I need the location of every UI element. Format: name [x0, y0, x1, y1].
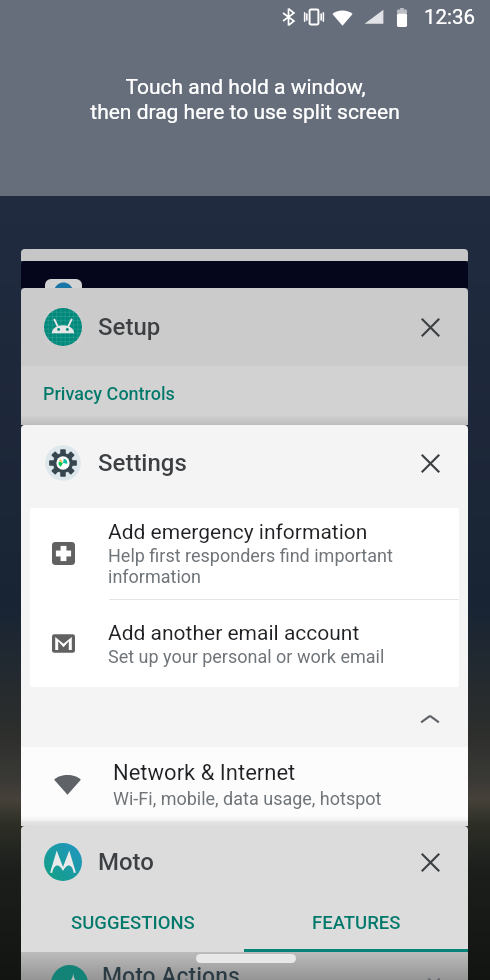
button[interactable]: FEATURES: [244, 897, 468, 949]
staticText: Set up your personal or work email: [108, 646, 385, 667]
button[interactable]: SUGGESTIONS: [21, 897, 244, 949]
button[interactable]: Setup: [21, 288, 468, 366]
staticText: Help first responders find important inf…: [108, 545, 393, 587]
staticText: 12:36: [424, 5, 476, 29]
button[interactable]: Settings: [21, 425, 468, 501]
staticText: Add another email account: [108, 621, 360, 646]
staticText: Add emergency information: [108, 520, 368, 545]
staticText: Network & Internet: [113, 760, 296, 786]
button[interactable]: Network & Internet: [21, 747, 468, 821]
button[interactable]: Add another email account: [30, 600, 459, 687]
staticText: Setup: [98, 313, 161, 341]
staticText: Moto Actions: [102, 963, 240, 980]
button[interactable]: Collapse: [21, 687, 468, 747]
staticText: Privacy Controls: [43, 383, 175, 404]
staticText: Settings: [98, 449, 187, 477]
staticText: Touch and hold a window,: [125, 75, 366, 100]
button[interactable]: Add emergency information: [30, 508, 459, 599]
staticText: then drag here to use split screen: [90, 100, 400, 125]
button[interactable]: Moto: [21, 826, 468, 897]
button[interactable]: Close Moto: [402, 834, 458, 890]
button[interactable]: Privacy Controls: [21, 366, 468, 425]
staticText: Wi-Fi, mobile, data usage, hotspot: [113, 788, 382, 809]
staticText: SUGGESTIONS: [71, 912, 195, 934]
button[interactable]: Moto Actions: [21, 952, 468, 980]
staticText: FEATURES: [312, 912, 401, 934]
button[interactable]: Close Settings: [402, 435, 458, 491]
staticText: Moto: [98, 848, 154, 876]
button[interactable]: Close Setup: [402, 299, 458, 355]
